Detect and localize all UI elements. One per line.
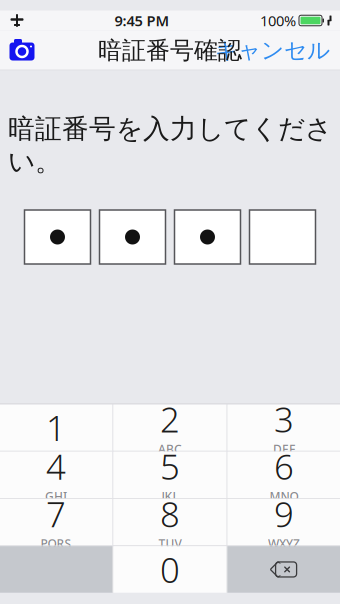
staticText: MNO — [270, 488, 299, 504]
button[interactable]: 6 — [227, 452, 340, 498]
staticText: TUV — [158, 536, 181, 552]
staticText: 3 — [274, 396, 294, 442]
button[interactable]: Delete — [227, 546, 340, 593]
staticText: 4 — [46, 443, 66, 489]
button[interactable]: 8 — [113, 499, 227, 545]
staticText: WXYZ — [268, 536, 300, 552]
staticText: 暗証番号を入力してください。 — [8, 112, 332, 178]
button[interactable]: 9 — [227, 499, 340, 545]
button[interactable]: 5 — [113, 452, 227, 498]
staticText: 1 — [46, 404, 66, 450]
staticText: キャンセル — [215, 37, 330, 64]
button[interactable]: 0 — [113, 546, 227, 593]
button[interactable]: 3 — [227, 404, 340, 451]
button[interactable]: 7 — [0, 499, 112, 545]
button[interactable]: キャンセル — [215, 30, 340, 70]
button[interactable]: Camera — [0, 30, 44, 70]
staticText: GHI — [45, 488, 67, 504]
staticText: 7 — [46, 491, 66, 537]
staticText: 暗証番号確認 — [98, 36, 242, 65]
button[interactable]: 2 — [113, 404, 227, 451]
staticText: 6 — [274, 443, 294, 489]
staticText: 9:45 PM — [114, 11, 169, 30]
staticText: 5 — [160, 443, 180, 489]
staticText: ABC — [158, 441, 182, 457]
staticText: 9 — [274, 491, 294, 537]
staticText: 8 — [160, 491, 180, 537]
staticText: JKL — [161, 488, 178, 504]
button[interactable]: 1 — [0, 404, 112, 451]
staticText: 2 — [160, 396, 180, 442]
staticText: 100% — [260, 11, 296, 30]
staticText: DEF — [273, 441, 295, 457]
staticText: PQRS — [40, 536, 71, 552]
staticText: 0 — [160, 546, 180, 592]
button[interactable]: 4 — [0, 452, 112, 498]
